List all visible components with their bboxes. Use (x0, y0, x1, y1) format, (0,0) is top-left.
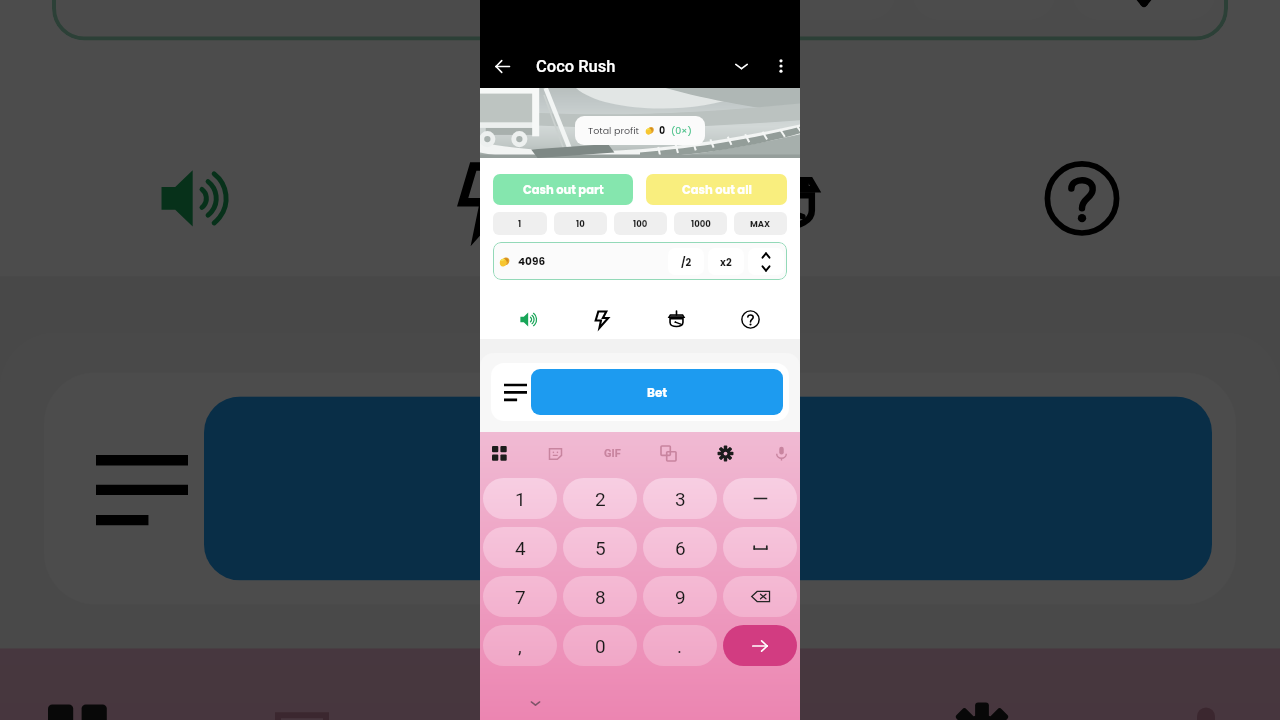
button[interactable]: Sound on (52, 152, 344, 240)
button[interactable]: enter (723, 625, 797, 666)
button[interactable]: 1 (483, 478, 557, 519)
button[interactable]: 4096 (52, 0, 1228, 40)
staticText: 1000 (691, 218, 711, 230)
button[interactable]: Bet (204, 396, 1212, 580)
button[interactable]: Cash out all (646, 174, 787, 205)
button[interactable]: Collapse (720, 44, 762, 88)
button[interactable]: , (483, 625, 557, 666)
button[interactable]: Bet (531, 369, 783, 415)
button[interactable]: More options (762, 44, 800, 88)
staticText: 1 (515, 488, 526, 510)
staticText: Total profit (588, 124, 639, 137)
button[interactable]: . (643, 625, 717, 666)
button[interactable]: 4096 (493, 242, 787, 280)
button[interactable]: Settings (932, 648, 1028, 720)
button[interactable]: Turbo mode (344, 152, 636, 240)
button[interactable]: Sound on (493, 308, 566, 330)
button[interactable]: 2 (563, 478, 637, 519)
staticText: 1 (518, 218, 522, 230)
staticText: Cash out part (523, 182, 604, 198)
button[interactable]: Cash out part (493, 174, 633, 205)
staticText: 6 (675, 537, 686, 559)
staticText: 8 (595, 586, 606, 608)
staticText: 7 (515, 586, 526, 608)
button[interactable]: Translate (704, 648, 800, 720)
button[interactable]: MAX (734, 212, 787, 235)
staticText: MAX (750, 218, 771, 230)
button[interactable]: 3 (643, 478, 717, 519)
button[interactable]: 10 (554, 212, 607, 235)
staticText: x2 (720, 255, 732, 269)
button[interactable]: 0 (563, 625, 637, 666)
button[interactable]: 1 (493, 212, 547, 235)
staticText: (0×) (671, 124, 692, 137)
button[interactable]: 6 (643, 527, 717, 568)
staticText: 2 (595, 488, 606, 510)
staticText: 0 (595, 635, 606, 657)
staticText: , (518, 635, 522, 657)
staticText: /2 (681, 255, 692, 269)
staticText: Bet (647, 384, 668, 401)
button[interactable]: Symbols (28, 648, 124, 720)
staticText: 3 (675, 488, 686, 510)
button[interactable]: Symbols (487, 432, 511, 474)
staticText: Coco Rush (536, 57, 616, 76)
button[interactable]: Hide keyboard (526, 694, 544, 712)
button[interactable]: 8 (563, 576, 637, 617)
button[interactable]: Menu (76, 420, 204, 556)
button[interactable]: Stickers (252, 648, 348, 720)
button[interactable]: 4 (483, 527, 557, 568)
staticText: GIF (604, 447, 621, 460)
button[interactable]: /2 (752, 0, 896, 20)
staticText: 0 (659, 124, 666, 137)
button[interactable]: Back (480, 44, 524, 88)
button[interactable]: Settings (713, 432, 737, 474)
button[interactable]: Increase or decrease bet (1072, 0, 1216, 20)
staticText: Bet (668, 456, 752, 524)
button[interactable]: GIF (600, 432, 624, 474)
button[interactable]: 9 (643, 576, 717, 617)
staticText: 9 (675, 586, 686, 608)
button[interactable]: Bonus (639, 308, 713, 330)
button[interactable]: Help (713, 308, 787, 330)
button[interactable]: /2 (668, 248, 704, 275)
button[interactable]: Translate (656, 432, 680, 474)
button[interactable]: del (723, 576, 797, 617)
button[interactable]: 100 (614, 212, 667, 235)
staticText: 10 (576, 218, 585, 230)
staticText: 5 (595, 537, 606, 559)
button[interactable]: 7 (483, 576, 557, 617)
staticText: . (677, 635, 683, 657)
staticText: 100 (633, 218, 648, 230)
button[interactable]: GIF (480, 648, 576, 720)
staticText: Cash out all (682, 182, 752, 198)
button[interactable]: Turbo mode (566, 308, 639, 330)
button[interactable]: Menu (499, 375, 531, 409)
button[interactable]: Increase or decrease bet (748, 248, 784, 275)
button[interactable]: Bonus (636, 152, 932, 240)
button[interactable]: space (723, 527, 797, 568)
button[interactable]: Help (932, 152, 1228, 240)
button[interactable]: 1000 (674, 212, 727, 235)
button[interactable]: Stickers (543, 432, 567, 474)
staticText: 4 (515, 537, 526, 559)
button[interactable]: Voice input (769, 432, 793, 474)
button[interactable]: minus (723, 478, 797, 519)
button[interactable]: 5 (563, 527, 637, 568)
staticText: 4096 (518, 254, 546, 269)
button[interactable]: x2 (708, 248, 744, 275)
button[interactable]: Total profit (575, 116, 705, 145)
